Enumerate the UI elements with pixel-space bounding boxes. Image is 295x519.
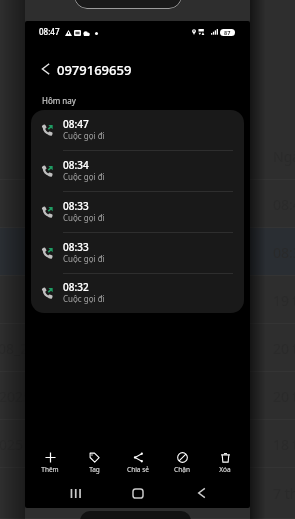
staticText: Thêm [41, 465, 59, 474]
button[interactable]: 08:32 [31, 274, 244, 313]
staticText: Cuộc gọi đi [63, 253, 105, 264]
staticText: 08:34 [63, 158, 89, 172]
staticText: 0979169659 [57, 61, 132, 79]
staticText: 08:47 [39, 26, 60, 37]
button[interactable]: 08:34 [31, 151, 244, 192]
button[interactable]: 08:33 [31, 233, 244, 274]
button[interactable]: Thêm [29, 446, 71, 478]
staticText: Cuộc gọi đi [63, 212, 105, 223]
staticText: Chia sẻ [127, 465, 149, 474]
button[interactable]: Recent apps [63, 481, 87, 505]
button[interactable]: Back [33, 57, 57, 81]
staticText: 08:33 [63, 199, 89, 213]
staticText: Chặn [174, 465, 190, 474]
staticText: Hôm nay [42, 95, 76, 106]
button[interactable]: Back [189, 481, 213, 505]
staticText: 87 [224, 29, 231, 36]
button[interactable]: Tag [73, 446, 115, 478]
staticText: 08_2 [0, 339, 29, 358]
staticText: 025 [0, 435, 24, 454]
staticText: Cuộc gọi đi [63, 293, 105, 304]
button[interactable]: Xóa [204, 446, 246, 478]
button[interactable]: Chặn [161, 446, 203, 478]
staticText: Cuộc gọi đi [63, 171, 105, 182]
staticText: 08:33 [63, 240, 89, 254]
button[interactable]: 08:33 [31, 192, 244, 233]
staticText: 08:47 [63, 117, 89, 131]
staticText: 2025 [0, 387, 32, 406]
button[interactable]: 08:47 [31, 110, 244, 151]
staticText: Tag [89, 465, 100, 474]
staticText: Cuộc gọi đi [63, 130, 105, 141]
staticText: 08:32 [63, 280, 89, 294]
button[interactable]: Home [126, 481, 150, 505]
staticText: Xóa [219, 465, 231, 474]
button[interactable]: Chia sẻ [117, 446, 159, 478]
